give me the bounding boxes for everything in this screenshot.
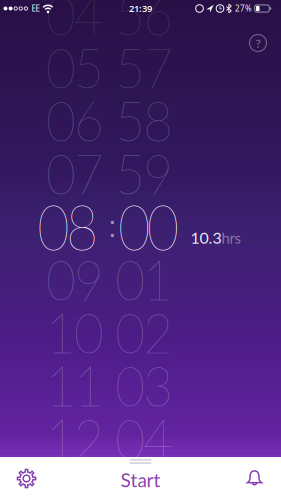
button[interactable]: Settings [9, 461, 43, 495]
staticText: 04 [44, 0, 106, 47]
staticText: 03 [113, 352, 175, 418]
staticText: 00 [115, 189, 183, 263]
staticText: 27% [235, 3, 252, 14]
button[interactable]: Alarm sound [237, 461, 271, 495]
staticText: 10.3 [190, 228, 221, 247]
button[interactable]: Start [100, 463, 180, 497]
staticText: 06 [44, 87, 106, 153]
staticText: 08 [34, 189, 102, 263]
staticText: 21:39 [129, 2, 152, 15]
staticText: 57 [113, 34, 175, 100]
staticText: 09 [44, 246, 106, 312]
staticText: ? [255, 36, 260, 50]
staticText: 11 [44, 352, 106, 418]
button[interactable]: Help [246, 31, 270, 55]
staticText: 58 [113, 87, 175, 153]
staticText: 56 [113, 0, 175, 47]
staticText: Start [120, 469, 160, 491]
staticText: EE [31, 3, 39, 14]
staticText: 04 [113, 405, 175, 471]
staticText: 12 [44, 405, 106, 471]
staticText: 59 [113, 140, 175, 206]
staticText: 10 [44, 299, 106, 365]
staticText: 07 [44, 140, 106, 206]
staticText: hrs [221, 229, 240, 247]
staticText: 05 [44, 34, 106, 100]
staticText: 02 [113, 299, 175, 365]
staticText: 01 [113, 246, 175, 312]
